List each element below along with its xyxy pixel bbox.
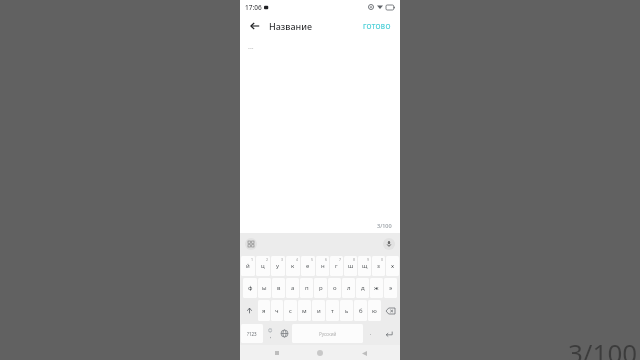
button[interactable]: н — [316, 256, 329, 276]
button[interactable]: т — [326, 300, 339, 321]
staticText: 7 — [339, 257, 342, 262]
button[interactable]: з — [372, 256, 385, 276]
staticText: я — [262, 307, 266, 315]
button[interactable]: ф — [243, 278, 257, 298]
staticText: . — [370, 330, 372, 337]
staticText: 4 — [296, 257, 299, 262]
button[interactable]: Back — [247, 18, 263, 34]
button[interactable]: ?123 — [241, 324, 263, 343]
button[interactable]: г — [330, 256, 343, 276]
staticText: ф — [248, 284, 253, 292]
staticText: 3/100 — [377, 222, 392, 229]
staticText: с — [289, 307, 292, 315]
staticText: 3/100 — [568, 335, 638, 360]
staticText: ч — [275, 307, 279, 315]
staticText: к — [291, 262, 295, 270]
staticText: е — [306, 262, 310, 270]
button[interactable]: ж — [370, 278, 383, 298]
button[interactable]: р — [314, 278, 327, 298]
staticText: т — [331, 307, 334, 315]
staticText: ж — [374, 284, 379, 292]
staticText: ☺ — [268, 328, 273, 333]
staticText: 9 — [367, 257, 370, 262]
staticText: у — [276, 262, 280, 270]
button[interactable]: ☺ — [264, 324, 277, 343]
staticText: 2 — [266, 257, 269, 262]
button[interactable]: е — [301, 256, 315, 276]
staticText: 17:06 — [245, 3, 262, 12]
staticText: ш — [348, 262, 354, 270]
button[interactable]: б — [354, 300, 367, 321]
staticText: з — [377, 262, 380, 270]
staticText: х — [391, 262, 395, 270]
button[interactable]: а — [286, 278, 299, 298]
button[interactable]: ГОТОВО — [361, 19, 393, 34]
staticText: 6 — [325, 257, 328, 262]
staticText: ю — [372, 307, 377, 315]
staticText: 1 — [251, 257, 254, 262]
button[interactable]: Voice input — [383, 238, 395, 250]
staticText: м — [302, 307, 307, 315]
staticText: ?123 — [247, 331, 257, 337]
staticText: , — [270, 333, 272, 340]
button[interactable]: . — [364, 324, 377, 343]
button[interactable]: д — [356, 278, 369, 298]
button[interactable]: Русский — [292, 324, 363, 343]
staticText: 8 — [353, 257, 356, 262]
staticText: ь — [345, 307, 349, 315]
button[interactable]: Emoji and stickers — [245, 238, 257, 250]
button[interactable]: л — [342, 278, 355, 298]
staticText: п — [305, 284, 309, 292]
staticText: ГОТОВО — [363, 22, 391, 31]
staticText: д — [361, 284, 365, 292]
button[interactable]: ы — [258, 278, 271, 298]
staticText: щ — [362, 262, 368, 270]
staticText: н — [321, 262, 325, 270]
button[interactable]: ц — [256, 256, 270, 276]
staticText: о — [333, 284, 337, 292]
button[interactable]: х — [386, 256, 399, 276]
staticText: г — [335, 262, 338, 270]
staticText: а — [291, 284, 295, 292]
button[interactable]: ш — [344, 256, 357, 276]
button[interactable]: о — [328, 278, 341, 298]
staticText: ы — [262, 284, 267, 292]
button[interactable]: у — [271, 256, 285, 276]
button[interactable]: с — [284, 300, 297, 321]
staticText: 3 — [281, 257, 284, 262]
button[interactable]: п — [300, 278, 313, 298]
staticText: 0 — [381, 257, 384, 262]
button[interactable]: к — [286, 256, 300, 276]
staticText: р — [319, 284, 323, 292]
staticText: и — [317, 307, 321, 315]
staticText: э — [389, 284, 392, 292]
button[interactable]: Change keyboard language — [278, 324, 291, 343]
button[interactable]: э — [384, 278, 397, 298]
button[interactable]: в — [272, 278, 285, 298]
button[interactable]: Home — [313, 346, 327, 360]
button[interactable]: Back — [357, 346, 371, 360]
staticText: Русский — [319, 331, 337, 337]
staticText: ц — [261, 262, 265, 270]
staticText: ... — [248, 42, 254, 52]
button[interactable]: я — [258, 300, 270, 321]
button[interactable]: и — [312, 300, 325, 321]
button[interactable]: Recent apps — [270, 346, 284, 360]
staticText: Название — [269, 20, 313, 32]
button[interactable]: Shift — [241, 300, 257, 321]
button[interactable]: м — [298, 300, 311, 321]
button[interactable]: ю — [368, 300, 381, 321]
button[interactable]: ч — [271, 300, 283, 321]
button[interactable]: Backspace — [382, 300, 399, 321]
button[interactable]: й — [241, 256, 255, 276]
button[interactable]: Enter — [378, 324, 399, 343]
staticText: в — [277, 284, 281, 292]
staticText: 5 — [311, 257, 314, 262]
button[interactable]: ь — [340, 300, 353, 321]
button[interactable]: щ — [358, 256, 371, 276]
staticText: б — [359, 307, 363, 315]
staticText: й — [246, 262, 250, 270]
staticText: л — [347, 284, 351, 292]
